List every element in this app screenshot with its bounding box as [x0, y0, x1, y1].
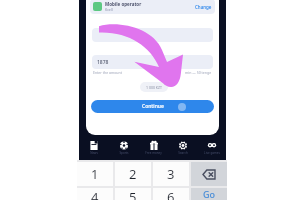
staticText: 1	[91, 165, 99, 183]
button[interactable]: 1 000 KZT	[140, 82, 168, 92]
staticText: Free money	[145, 151, 162, 155]
staticText: Mobile operator	[105, 1, 142, 7]
staticText: min — 50 tenge	[185, 70, 212, 75]
button[interactable]: Free money	[139, 137, 168, 155]
button[interactable]: Mobile operator	[90, 0, 215, 14]
button[interactable]: Go	[191, 188, 227, 200]
staticText: Kcell	[105, 7, 113, 12]
staticText: Search	[178, 151, 188, 155]
button[interactable]: 6	[153, 188, 189, 200]
button[interactable]: Sports	[109, 137, 139, 155]
staticText: 1878	[97, 59, 109, 66]
staticText: 4	[91, 188, 99, 200]
staticText: Sports	[119, 151, 129, 155]
staticText: 3	[167, 165, 175, 183]
button[interactable]: Continue	[91, 100, 214, 113]
button[interactable]: Backspace	[191, 162, 227, 186]
button[interactable]: News	[79, 137, 109, 155]
button[interactable]: 4	[77, 188, 113, 200]
staticText: 6	[167, 188, 175, 200]
staticText: Go	[203, 188, 216, 200]
button[interactable]: 1878	[92, 55, 213, 69]
staticText: Continue	[142, 103, 164, 110]
button[interactable]: Live games	[197, 137, 226, 155]
staticText: 1 000 KZT	[146, 85, 162, 90]
button[interactable]: Search	[168, 137, 197, 155]
button[interactable]: 5	[115, 188, 151, 200]
staticText: Change	[195, 4, 212, 10]
staticText: 5	[129, 188, 137, 200]
button[interactable]	[92, 28, 213, 42]
button[interactable]: 2	[115, 162, 151, 186]
button[interactable]: 1	[77, 162, 113, 186]
staticText: 2	[129, 165, 137, 183]
button[interactable]: 3	[153, 162, 189, 186]
staticText: News	[90, 151, 98, 155]
staticText: Live games	[204, 151, 220, 155]
staticText: Enter the amount	[93, 70, 122, 75]
